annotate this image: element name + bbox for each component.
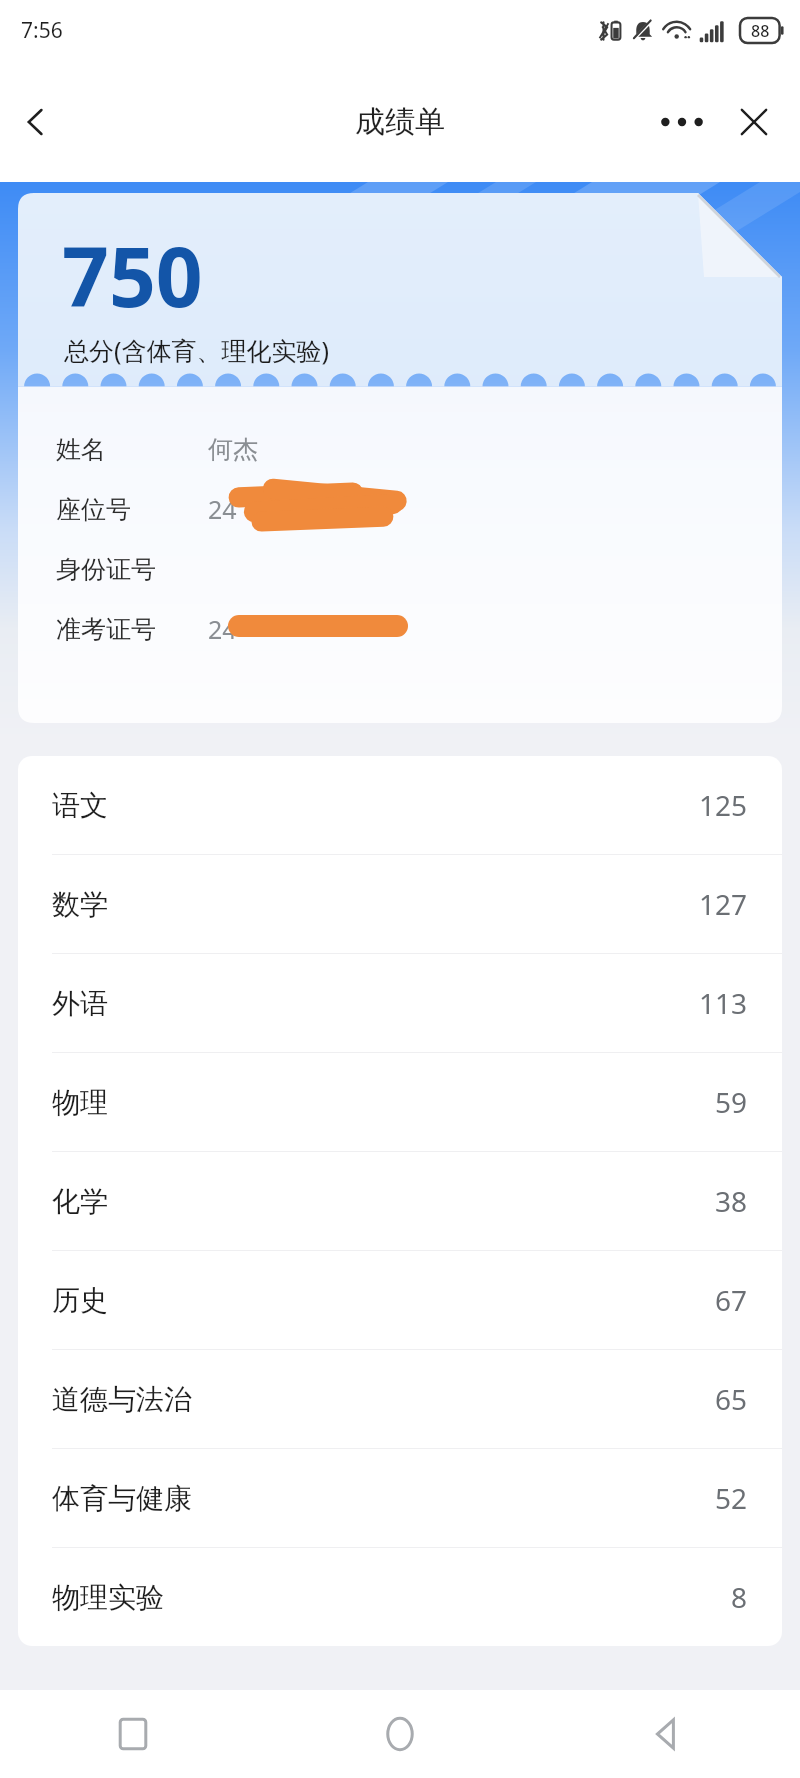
staticText: 姓名 [56,434,106,465]
staticText: 外语 [52,986,108,1021]
staticText: 身份证号 [56,554,156,585]
staticText: 125 [699,786,748,824]
button[interactable]: 体育与健康 [18,1449,782,1547]
staticText: 准考证号 [56,614,156,645]
staticText: 7:56 [21,16,63,45]
staticText: 8 [731,1578,748,1616]
staticText: 成绩单 [355,103,445,141]
staticText: 语文 [52,788,108,823]
button[interactable]: 语文 [18,756,782,854]
button[interactable]: Close [718,86,790,158]
staticText: 数学 [52,887,108,922]
staticText: 道德与法治 [52,1382,192,1417]
staticText: 何杰 [208,434,258,465]
button[interactable]: Back [533,1690,800,1778]
staticText: 总分(含体育、理化实验) [64,333,330,367]
staticText: 历史 [52,1283,108,1318]
staticText: 127 [699,885,748,923]
button[interactable]: 物理实验 [18,1548,782,1646]
button[interactable]: More options [646,86,718,158]
staticText: 座位号 [56,494,131,525]
staticText: 113 [699,984,748,1022]
button[interactable]: Home [266,1690,533,1778]
button[interactable]: 物理 [18,1053,782,1151]
staticText: 38 [715,1182,748,1220]
button[interactable]: Back [0,86,72,158]
button[interactable]: Recent apps [0,1690,266,1778]
staticText: 化学 [52,1184,108,1219]
staticText: 750 [62,219,203,331]
staticText: 52 [715,1479,748,1517]
button[interactable]: 化学 [18,1152,782,1250]
staticText: 88 [751,20,770,42]
staticText: 67 [715,1281,748,1319]
staticText: 物理 [52,1085,108,1120]
button[interactable]: 数学 [18,855,782,953]
button[interactable]: 外语 [18,954,782,1052]
staticText: 物理实验 [52,1580,164,1615]
staticText: 24 [208,612,237,646]
staticText: 65 [715,1380,748,1418]
staticText: 体育与健康 [52,1481,192,1516]
button[interactable]: 历史 [18,1251,782,1349]
staticText: 59 [715,1083,748,1121]
staticText: 24 [208,492,237,526]
button[interactable]: 道德与法治 [18,1350,782,1448]
